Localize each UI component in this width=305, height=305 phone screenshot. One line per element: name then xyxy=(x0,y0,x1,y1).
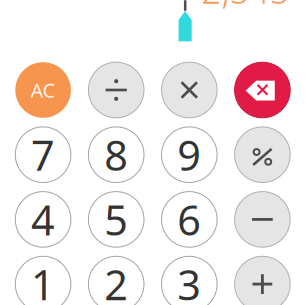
button[interactable]: 8 xyxy=(88,127,144,182)
button[interactable]: 3 xyxy=(161,256,217,305)
button[interactable]: 5 xyxy=(88,192,144,247)
staticText: 6 xyxy=(177,192,201,247)
staticText: 2 xyxy=(104,257,128,305)
button[interactable]: Minus xyxy=(235,192,290,247)
staticText: 3 xyxy=(177,257,201,305)
button[interactable]: 7 xyxy=(15,127,71,182)
staticText: 9 xyxy=(177,127,201,182)
button[interactable]: 9 xyxy=(161,127,217,182)
staticText: 5 xyxy=(104,192,128,247)
button[interactable]: AC xyxy=(15,62,71,118)
staticText: 1 xyxy=(31,257,55,305)
staticText: 7 xyxy=(31,127,55,182)
button[interactable]: 4 xyxy=(15,192,71,247)
staticText: AC xyxy=(31,76,56,104)
button[interactable]: 1 xyxy=(15,256,71,305)
button[interactable]: Divide xyxy=(88,62,144,118)
button[interactable]: Percent xyxy=(235,127,290,182)
staticText: 8 xyxy=(104,127,128,182)
button[interactable]: Plus xyxy=(235,256,290,305)
staticText: 4 xyxy=(31,192,55,247)
button[interactable]: Multiply xyxy=(161,62,217,118)
button[interactable]: 2 xyxy=(88,256,144,305)
button[interactable]: Delete xyxy=(235,62,290,118)
button[interactable]: 6 xyxy=(161,192,217,247)
staticText: 2,545 xyxy=(201,0,289,14)
